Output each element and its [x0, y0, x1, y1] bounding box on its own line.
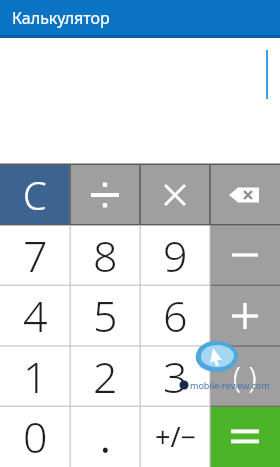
button[interactable]: Калькулятор: [0, 0, 280, 35]
button[interactable]: ( ): [210, 346, 280, 406]
button[interactable]: 5: [70, 285, 140, 346]
staticText: 8: [93, 226, 118, 285]
staticText: C: [23, 169, 47, 221]
button[interactable]: [140, 164, 210, 225]
button[interactable]: [210, 285, 280, 346]
button[interactable]: 0: [0, 406, 70, 467]
button[interactable]: [70, 164, 140, 225]
button[interactable]: C: [0, 164, 70, 225]
staticText: 9: [163, 226, 188, 285]
button[interactable]: [210, 225, 280, 285]
staticText: +/−: [155, 418, 196, 455]
button[interactable]: 4: [0, 285, 70, 346]
button[interactable]: [210, 164, 280, 225]
staticText: 7: [23, 226, 48, 285]
button[interactable]: .: [70, 406, 140, 467]
button[interactable]: 6: [140, 285, 210, 346]
button[interactable]: [210, 406, 280, 467]
staticText: .: [100, 410, 111, 464]
staticText: 4: [23, 286, 48, 345]
staticText: 5: [93, 286, 118, 345]
button[interactable]: 8: [70, 225, 140, 285]
staticText: 6: [163, 286, 188, 345]
button[interactable]: 2: [70, 346, 140, 406]
button[interactable]: 3: [140, 346, 210, 406]
button[interactable]: +/−: [140, 406, 210, 467]
staticText: mobile-review.com: [190, 379, 270, 391]
staticText: 2: [93, 347, 118, 406]
button[interactable]: 7: [0, 225, 70, 285]
staticText: 0: [23, 407, 48, 466]
staticText: 1: [23, 347, 48, 406]
staticText: ( ): [233, 357, 257, 396]
button[interactable]: 9: [140, 225, 210, 285]
staticText: 3: [163, 347, 188, 406]
button[interactable]: 1: [0, 346, 70, 406]
staticText: Калькулятор: [12, 7, 110, 29]
